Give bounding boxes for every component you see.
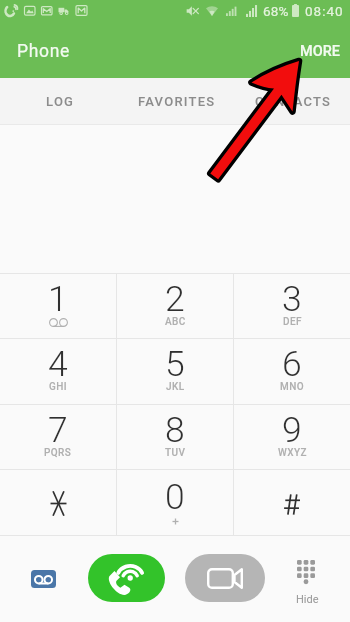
staticText: Hide — [296, 593, 319, 606]
staticText: 7 — [48, 409, 68, 451]
button[interactable] — [234, 470, 350, 535]
staticText: MNO — [280, 381, 304, 393]
button[interactable]: Video call — [185, 554, 265, 602]
staticText: DEF — [283, 316, 302, 328]
button[interactable]: Voicemail — [31, 570, 56, 588]
staticText: WXYZ — [278, 447, 307, 459]
button[interactable]: Hide — [281, 548, 333, 608]
staticText: 08:40 — [305, 3, 344, 19]
button[interactable]: 9 — [234, 405, 350, 469]
button[interactable]: CONTACTS — [233, 78, 350, 124]
button[interactable]: LOG — [0, 78, 116, 124]
staticText: LOG — [46, 94, 75, 109]
button[interactable]: 6 — [234, 339, 350, 404]
button[interactable]: 3 — [234, 274, 350, 338]
button[interactable]: 7 — [0, 405, 116, 469]
staticText: 2 — [165, 278, 185, 320]
staticText: GHI — [49, 381, 67, 393]
staticText: 68% — [263, 3, 289, 19]
button[interactable]: 5 — [117, 339, 233, 404]
staticText: 9 — [282, 409, 302, 451]
button[interactable]: 2 — [117, 274, 233, 338]
button[interactable]: Call — [88, 554, 165, 602]
staticText: 8 — [165, 409, 185, 451]
staticText: TUV — [165, 447, 186, 459]
button[interactable]: 1 — [0, 274, 116, 338]
button[interactable] — [0, 470, 116, 535]
staticText: 4 — [48, 343, 68, 385]
staticText: FAVORITES — [138, 94, 216, 109]
staticText: 5 — [165, 343, 185, 385]
staticText: MORE — [300, 43, 340, 60]
staticText: 6 — [282, 343, 302, 385]
staticText: CONTACTS — [255, 94, 332, 109]
button[interactable]: MORE — [282, 26, 350, 75]
button[interactable]: 8 — [117, 405, 233, 469]
button[interactable]: 0 — [117, 470, 233, 535]
staticText: PQRS — [44, 447, 72, 459]
staticText: Phone — [17, 41, 71, 62]
staticText: 1 — [48, 278, 68, 320]
staticText: 0 — [165, 476, 185, 518]
button[interactable]: FAVORITES — [116, 78, 233, 124]
staticText: JKL — [166, 381, 185, 393]
staticText: ABC — [165, 316, 186, 328]
staticText: 3 — [282, 278, 302, 320]
button[interactable]: 4 — [0, 339, 116, 404]
